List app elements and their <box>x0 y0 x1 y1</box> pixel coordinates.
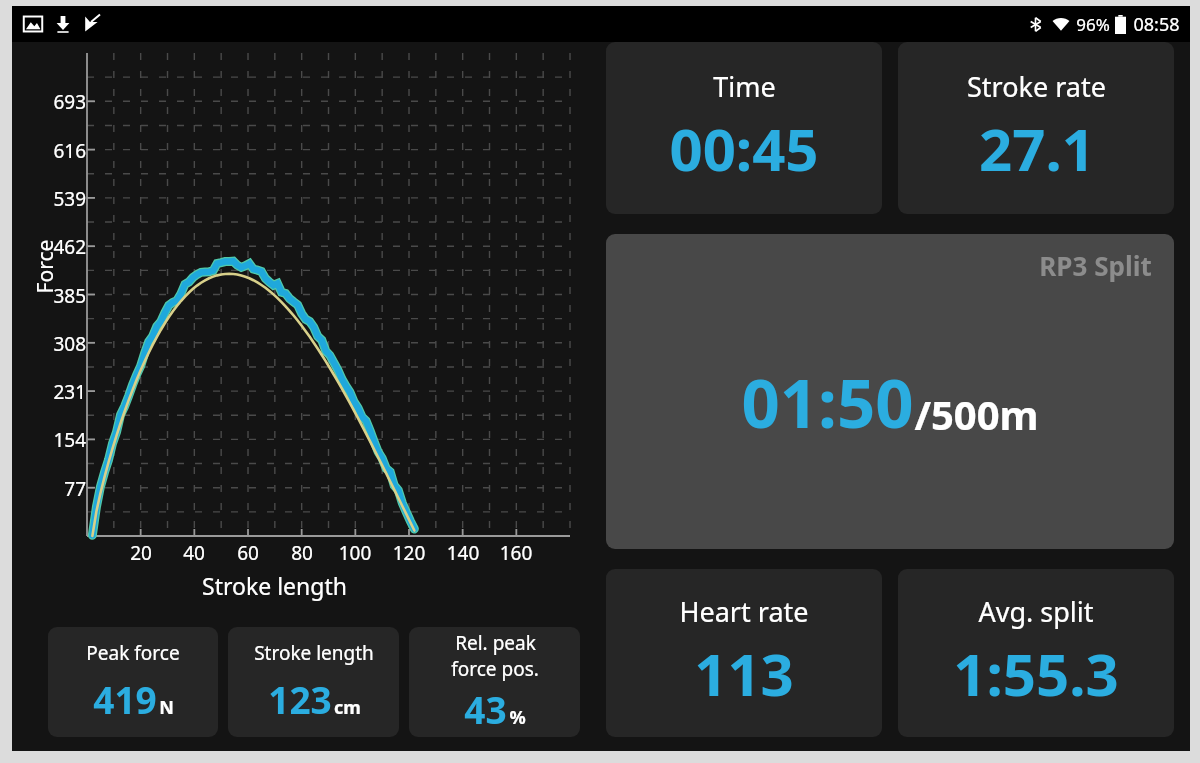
staticText: 539 <box>40 186 86 212</box>
staticText: 77 <box>40 476 86 502</box>
staticText: 113 <box>694 634 794 713</box>
button[interactable]: Avg. split <box>898 569 1174 737</box>
staticText: 40 <box>169 540 219 566</box>
staticText: Avg. split <box>978 593 1094 630</box>
staticText: % <box>509 705 526 730</box>
button[interactable]: Rel. peak <box>409 627 580 737</box>
staticText: 419 <box>93 674 157 724</box>
other: Tasks <box>82 14 102 34</box>
staticText: 100 <box>330 540 380 566</box>
staticText: 231 <box>40 379 86 405</box>
staticText: 462 <box>40 234 86 260</box>
staticText: 616 <box>40 138 86 164</box>
staticText: 01:50 <box>741 356 914 447</box>
staticText: Time <box>713 68 776 105</box>
staticText: Stroke rate <box>967 68 1106 105</box>
staticText: 140 <box>438 540 488 566</box>
staticText: N <box>159 695 174 720</box>
staticText: 43 <box>464 684 507 734</box>
staticText: 154 <box>40 427 86 453</box>
staticText: 120 <box>384 540 434 566</box>
staticText: 20 <box>116 540 166 566</box>
button[interactable]: Stroke length <box>228 627 399 737</box>
staticText: Stroke length <box>202 570 347 601</box>
staticText: Peak force <box>86 640 180 666</box>
staticText: 160 <box>491 540 541 566</box>
staticText: 60 <box>223 540 273 566</box>
staticText: 80 <box>277 540 327 566</box>
button[interactable]: Peak force <box>48 627 218 737</box>
staticText: 1:55.3 <box>953 634 1119 713</box>
other: Download <box>53 14 73 34</box>
staticText: /500m <box>914 387 1039 441</box>
staticText: Force <box>30 239 59 293</box>
staticText: Heart rate <box>679 593 809 630</box>
staticText: RP3 Split <box>1039 248 1152 283</box>
staticText: 00:45 <box>669 109 819 188</box>
staticText: 96% <box>1076 13 1110 36</box>
staticText: Rel. peak <box>455 630 536 656</box>
staticText: cm <box>334 695 361 720</box>
staticText: 693 <box>40 89 86 115</box>
staticText: 123 <box>268 674 332 724</box>
staticText: force pos. <box>451 656 539 682</box>
staticText: 27.1 <box>979 109 1095 188</box>
staticText: Stroke length <box>254 640 374 666</box>
staticText: 308 <box>40 331 86 357</box>
button[interactable]: Time <box>606 42 882 214</box>
button[interactable]: Heart rate <box>606 569 882 737</box>
button[interactable]: RP3 Split <box>606 234 1174 549</box>
button[interactable]: Stroke rate <box>898 42 1174 214</box>
staticText: 385 <box>40 283 86 309</box>
other: Screenshot <box>22 13 44 35</box>
staticText: 08:58 <box>1133 12 1180 37</box>
